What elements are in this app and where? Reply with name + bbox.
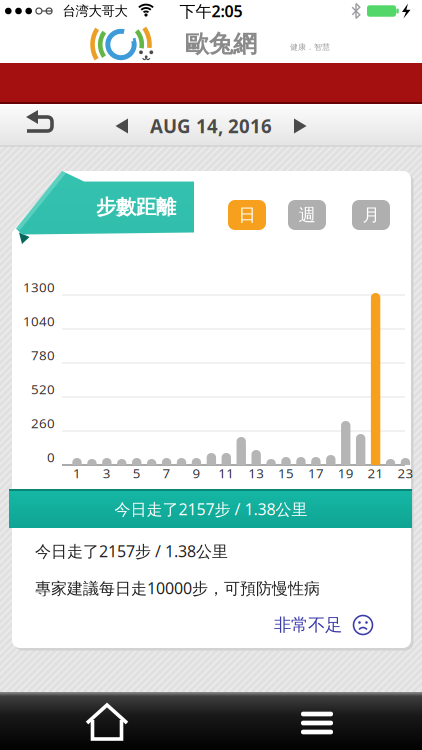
button[interactable]: Back <box>11 108 55 144</box>
staticText: 3 <box>103 464 111 482</box>
staticText: 下午2:05 <box>179 0 242 22</box>
button[interactable]: Menu <box>287 698 347 748</box>
staticText: 非常不足 <box>274 614 342 636</box>
staticText: 19 <box>338 464 354 482</box>
staticText: 5 <box>133 464 141 482</box>
staticText: 日 <box>238 204 255 226</box>
staticText: 1 <box>73 464 81 482</box>
staticText: AUG 14, 2016 <box>150 114 272 138</box>
staticText: 專家建議每日走10000步，可預防慢性病 <box>35 577 320 599</box>
staticText: 9 <box>192 464 200 482</box>
button[interactable]: Home <box>77 698 137 748</box>
staticText: 13 <box>248 464 264 482</box>
staticText: 23 <box>397 464 413 482</box>
staticText: 7 <box>163 464 171 482</box>
staticText: 780 <box>31 346 55 364</box>
button[interactable]: 週 <box>288 200 326 230</box>
staticText: 台湾大哥大 <box>62 3 127 19</box>
staticText: 520 <box>31 380 55 398</box>
staticText: 今日走了2157步 / 1.38公里 <box>114 498 307 520</box>
staticText: 11 <box>218 464 234 482</box>
staticText: 今日走了2157步 / 1.38公里 <box>35 540 228 562</box>
staticText: 健康．智慧 <box>290 42 330 52</box>
staticText: 15 <box>278 464 294 482</box>
button[interactable]: Previous day <box>113 117 131 135</box>
staticText: 17 <box>308 464 324 482</box>
staticText: 1040 <box>23 312 55 330</box>
staticText: 月 <box>362 204 379 226</box>
button[interactable]: 日 <box>228 200 266 230</box>
staticText: 週 <box>298 204 315 226</box>
staticText: 歐兔網 <box>185 29 257 59</box>
button[interactable]: Next day <box>291 117 309 135</box>
staticText: 步數距離 <box>96 195 176 219</box>
staticText: 260 <box>31 414 55 432</box>
staticText: 21 <box>368 464 384 482</box>
staticText: 0 <box>47 448 55 466</box>
staticText: 1300 <box>23 278 55 296</box>
button[interactable]: 月 <box>352 200 390 230</box>
